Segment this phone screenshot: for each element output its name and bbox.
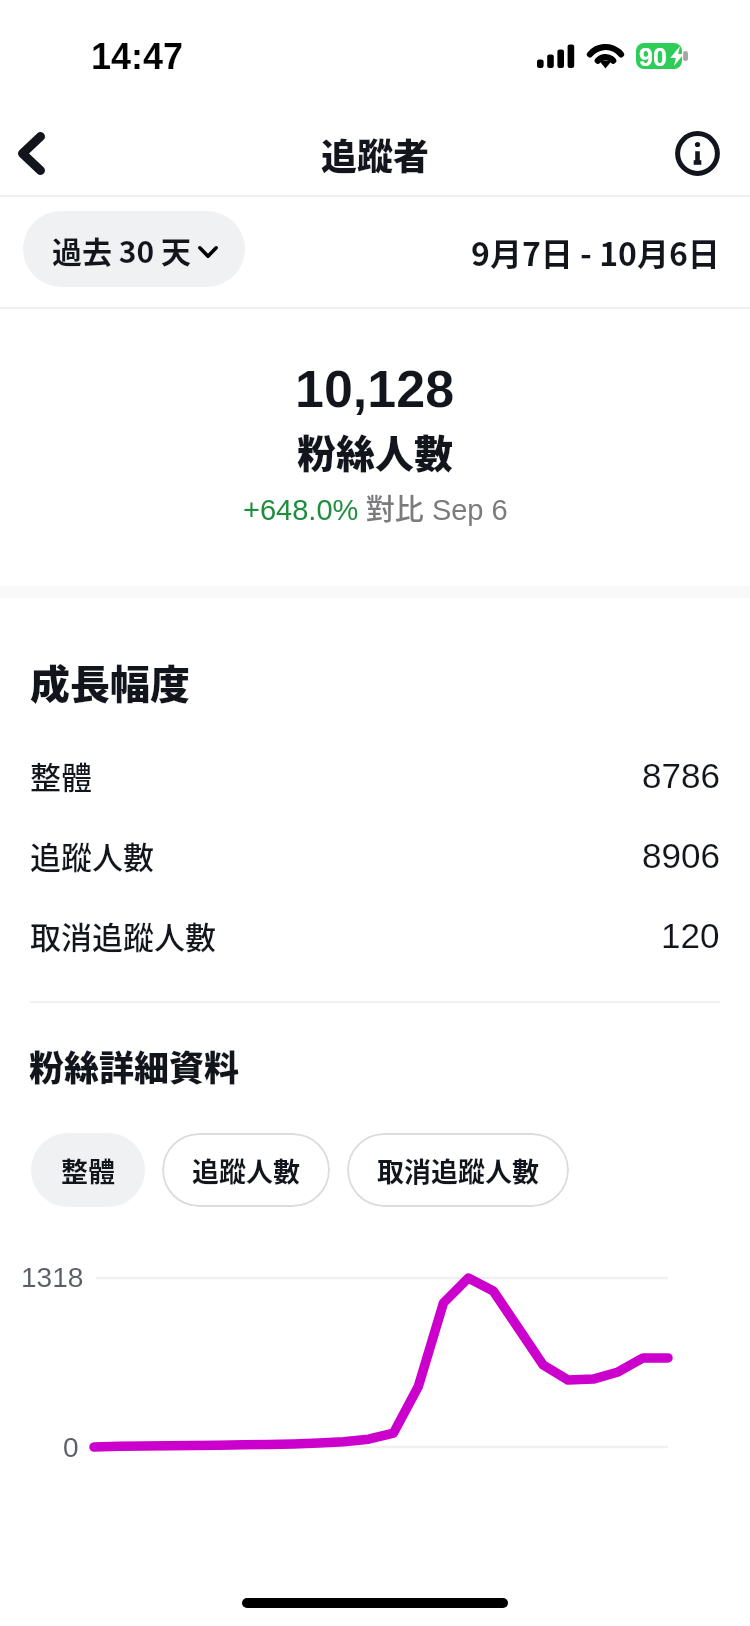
staticText: 追蹤人數 [30,833,154,878]
staticText: 8906 [642,836,720,875]
button[interactable]: 追蹤人數 [162,1133,330,1207]
staticText: +648.0% 對比 Sep 6 [243,486,508,528]
staticText: 追蹤者 [321,128,430,180]
button[interactable]: 整體 [31,1133,145,1207]
staticText: 整體 [30,753,92,798]
staticText: 14:47 [91,36,184,76]
button[interactable]: 取消追蹤人數 [0,895,750,975]
button[interactable]: 追蹤人數 [0,815,750,895]
staticText: 成長幅度 [30,653,190,711]
staticText: 取消追蹤人數 [30,913,216,958]
staticText: 0 [63,1432,79,1463]
button[interactable]: Back [0,110,66,196]
button[interactable]: 取消追蹤人數 [347,1133,569,1207]
staticText: 整體 [61,1151,115,1190]
staticText: 過去 30 天 [52,228,192,271]
staticText: 取消追蹤人數 [377,1151,539,1190]
staticText: 1318 [21,1262,84,1293]
button[interactable]: Information [659,110,735,196]
staticText: 粉絲人數 [297,423,454,479]
staticText: 9月7日 - 10月6日 [471,229,720,275]
staticText: 追蹤人數 [192,1151,300,1190]
button[interactable]: 整體 [0,735,750,815]
staticText: 10,128 [295,360,455,418]
staticText: 粉絲詳細資料 [29,1040,240,1091]
staticText: 120 [661,916,720,955]
button[interactable]: 過去 30 天 [23,211,245,287]
staticText: 8786 [642,756,720,795]
staticText: 90 [639,43,667,69]
